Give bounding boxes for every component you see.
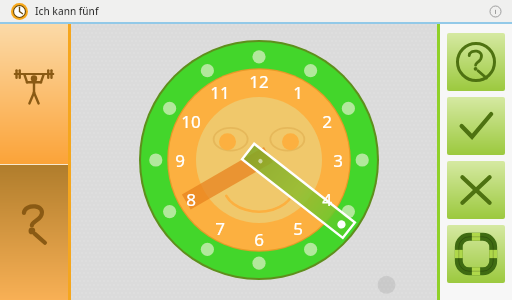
button[interactable]: Exercise (0, 24, 68, 164)
staticText: 4 (322, 188, 332, 211)
staticText: 7 (215, 217, 225, 240)
staticText: 10 (181, 110, 201, 133)
button[interactable]: Confirm (447, 97, 505, 155)
staticText: 6 (254, 228, 264, 251)
staticText: 8 (186, 188, 196, 211)
button[interactable]: Hint (447, 33, 505, 91)
staticText: 3 (333, 149, 343, 172)
staticText: 12 (249, 70, 269, 93)
staticText: Ich kann fünf (35, 4, 99, 18)
button[interactable]: App icon (11, 3, 28, 20)
button[interactable]: Help (0, 165, 68, 300)
staticText: 2 (322, 110, 332, 133)
button[interactable]: Info (485, 1, 505, 21)
button[interactable]: Lifebuoy (447, 225, 505, 283)
staticText: 5 (293, 217, 303, 240)
staticText: 1 (293, 81, 303, 104)
staticText: 11 (210, 81, 230, 104)
button[interactable]: Cancel (447, 161, 505, 219)
staticText: 9 (175, 149, 185, 172)
